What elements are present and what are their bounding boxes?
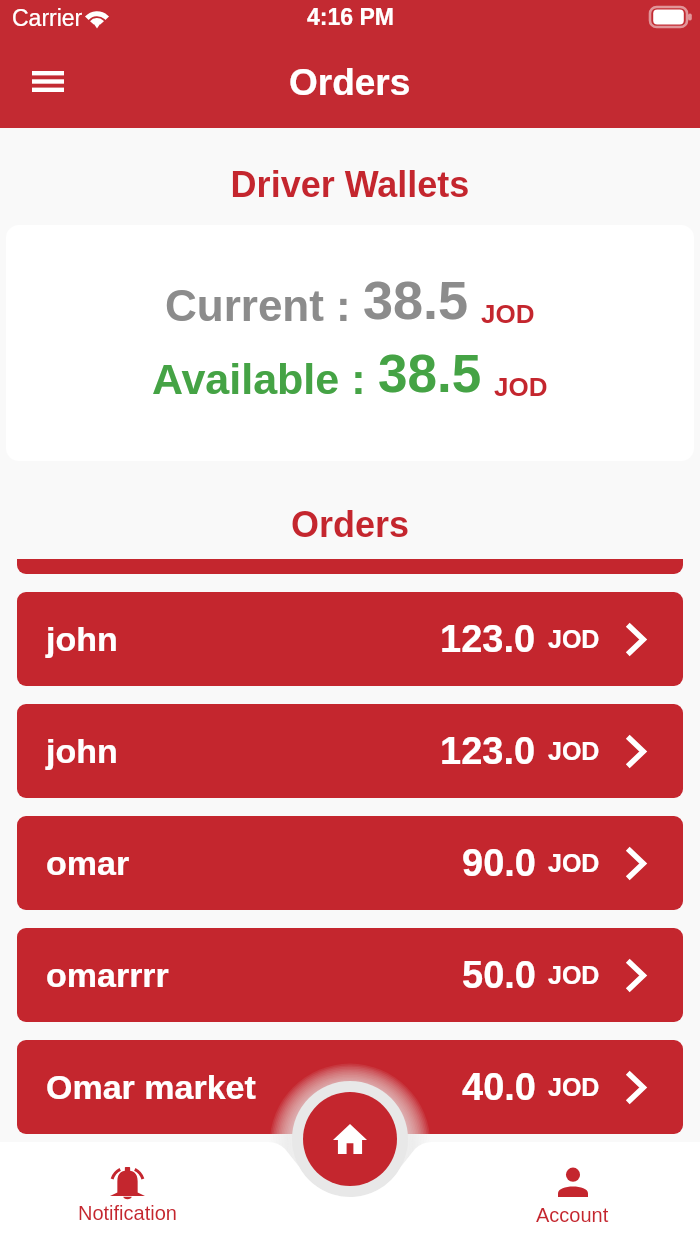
staticText: JOD — [494, 372, 548, 401]
staticText: 38.5 — [378, 344, 482, 403]
staticText: Driver Wallets — [0, 164, 700, 204]
staticText: JOD — [481, 299, 535, 328]
staticText: JOD — [548, 1073, 600, 1101]
staticText: Omar market — [46, 1068, 256, 1106]
button[interactable]: john — [17, 592, 683, 686]
staticText: Orders — [289, 62, 411, 103]
button[interactable]: omarrrr — [17, 928, 683, 1022]
staticText: john — [46, 732, 118, 770]
button[interactable]: Home — [303, 1092, 397, 1186]
staticText: 90.0 — [462, 842, 536, 884]
staticText: Current : — [165, 281, 363, 330]
staticText: Orders — [0, 504, 700, 544]
staticText: 40.0 — [462, 1066, 536, 1108]
button[interactable]: john — [17, 559, 683, 574]
staticText: JOD — [548, 849, 600, 877]
staticText: JOD — [548, 737, 600, 765]
button[interactable]: Notification — [45, 1167, 210, 1237]
staticText: JOD — [548, 625, 600, 653]
staticText: JOD — [548, 961, 600, 989]
staticText: 123.0 — [440, 618, 536, 660]
button[interactable]: Account — [490, 1167, 655, 1237]
staticText: Notification — [78, 1202, 177, 1224]
staticText: 123.0 — [440, 730, 536, 772]
staticText: 50.0 — [462, 954, 536, 996]
button[interactable]: omar — [17, 816, 683, 910]
staticText: john — [46, 620, 118, 658]
staticText: Carrier — [12, 5, 83, 31]
staticText: 4:16 PM — [307, 4, 394, 30]
staticText: Account — [536, 1204, 609, 1226]
button[interactable]: Menu — [14, 56, 82, 118]
staticText: 38.5 — [363, 270, 469, 330]
button[interactable]: Omar market — [17, 1040, 683, 1134]
staticText: omar — [46, 844, 130, 882]
staticText: Available : — [152, 355, 378, 403]
button[interactable]: john — [17, 704, 683, 798]
staticText: omarrrr — [46, 956, 169, 994]
